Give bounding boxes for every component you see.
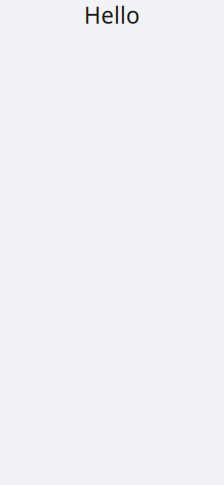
- staticText: Hello: [84, 0, 140, 30]
